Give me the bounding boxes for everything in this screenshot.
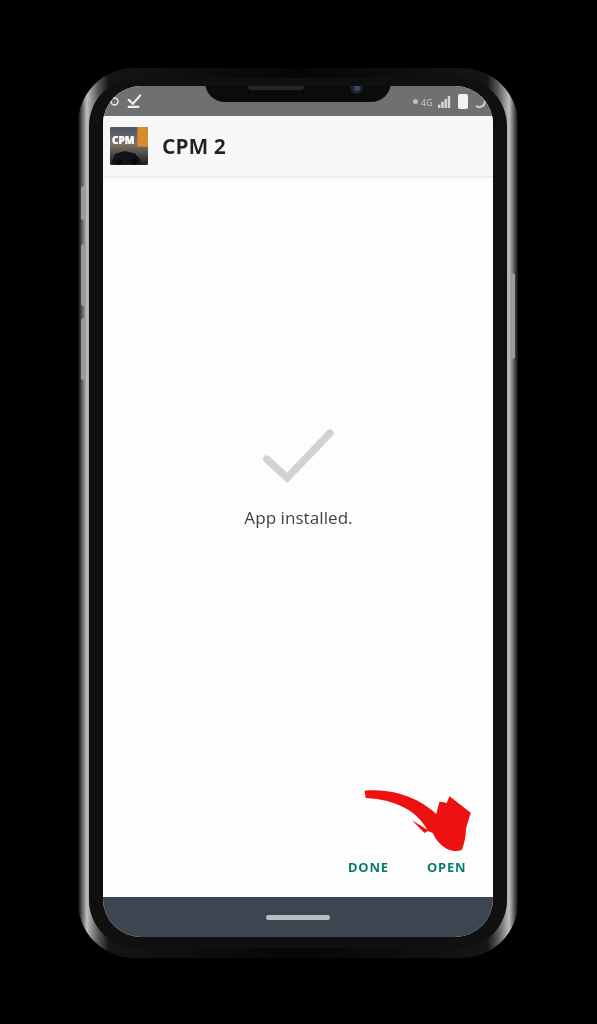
- button[interactable]: Home gesture bar: [266, 915, 330, 920]
- staticText: CPM: [112, 133, 135, 147]
- button[interactable]: OPEN: [415, 849, 479, 885]
- other: Arrow pointing to Open: [362, 765, 487, 857]
- button[interactable]: DONE: [336, 849, 401, 885]
- staticText: App installed.: [244, 506, 353, 529]
- staticText: CPM 2: [162, 132, 226, 161]
- staticText: OPEN: [427, 858, 467, 876]
- staticText: 4G: [421, 96, 433, 108]
- staticText: DONE: [348, 858, 389, 876]
